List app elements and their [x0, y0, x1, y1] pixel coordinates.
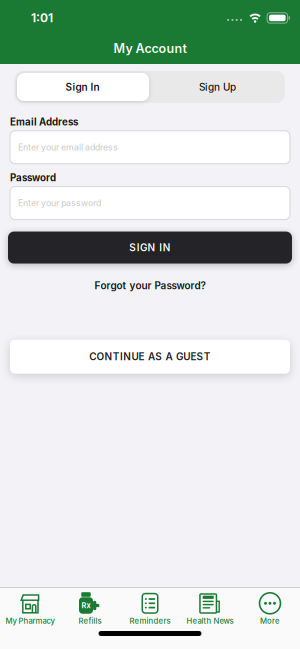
staticText: My Account — [113, 41, 186, 56]
staticText: Password — [10, 172, 56, 184]
staticText: Rx — [81, 601, 90, 610]
staticText: Forgot your Password? — [94, 280, 205, 292]
staticText: Refills — [78, 616, 101, 626]
staticText: Email Address — [10, 116, 78, 128]
button[interactable]: My Pharmacy — [0, 592, 60, 626]
staticText: SIGN IN — [129, 241, 171, 254]
staticText: Reminders — [129, 616, 170, 626]
staticText: Enter your email address — [18, 142, 118, 153]
staticText: CONTINUE AS A GUEST — [89, 351, 211, 363]
button[interactable]: Sign Up — [150, 71, 285, 103]
button[interactable]: Reminders — [120, 592, 180, 626]
staticText: My Pharmacy — [5, 616, 54, 626]
staticText: Enter your password — [18, 198, 101, 208]
staticText: More — [260, 616, 280, 626]
staticText: 1:01 — [31, 11, 53, 25]
button[interactable]: Sign In — [15, 71, 150, 103]
button[interactable]: Rx — [60, 592, 120, 626]
button[interactable]: Health News — [180, 592, 240, 626]
staticText: Sign Up — [199, 81, 236, 93]
button[interactable]: More — [240, 592, 300, 626]
button[interactable]: CONTINUE AS A GUEST — [0, 340, 300, 374]
button[interactable]: SIGN IN — [0, 232, 300, 264]
button[interactable]: Forgot your Password? — [94, 280, 205, 292]
staticText: Health News — [186, 616, 233, 626]
staticText: Sign In — [65, 81, 99, 93]
